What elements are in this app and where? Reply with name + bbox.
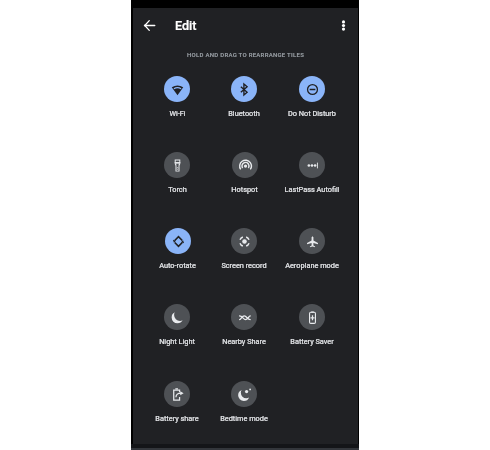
staticText: Battery Saver: [290, 337, 334, 346]
button[interactable]: Hotspot: [214, 152, 274, 197]
button[interactable]: Night Light: [147, 304, 207, 349]
staticText: Do Not Disturb: [288, 109, 336, 118]
button[interactable]: Battery Saver: [282, 304, 342, 349]
button[interactable]: Battery share: [147, 381, 207, 426]
button[interactable]: Aeroplane mode: [282, 228, 342, 273]
staticText: Bluetooth: [228, 109, 260, 118]
staticText: Screen record: [221, 261, 267, 270]
staticText: Edit: [175, 18, 197, 33]
staticText: Torch: [168, 185, 187, 194]
staticText: Night Light: [159, 337, 195, 346]
button[interactable]: Bluetooth: [214, 76, 274, 121]
staticText: Aeroplane mode: [285, 261, 339, 270]
staticText: Nearby Share: [222, 337, 266, 346]
staticText: Bedtime mode: [220, 414, 268, 423]
button[interactable]: Bedtime mode: [214, 381, 274, 426]
button[interactable]: Nearby Share: [214, 304, 274, 349]
button[interactable]: More options: [332, 14, 354, 36]
button[interactable]: Screen record: [214, 228, 274, 273]
staticText: Wi-Fi: [169, 109, 186, 118]
staticText: LastPass Autofill: [284, 185, 340, 194]
button[interactable]: Back: [138, 14, 160, 36]
staticText: Battery share: [155, 414, 199, 423]
staticText: Auto-rotate: [159, 261, 196, 270]
button[interactable]: LastPass Autofill: [282, 152, 342, 197]
button[interactable]: Wi-Fi: [147, 76, 207, 121]
button[interactable]: Torch: [147, 152, 207, 197]
staticText: HOLD AND DRAG TO REARRANGE TILES: [187, 51, 305, 58]
button[interactable]: Do Not Disturb: [282, 76, 342, 121]
button[interactable]: Auto-rotate: [147, 228, 207, 273]
staticText: Hotspot: [231, 185, 258, 194]
